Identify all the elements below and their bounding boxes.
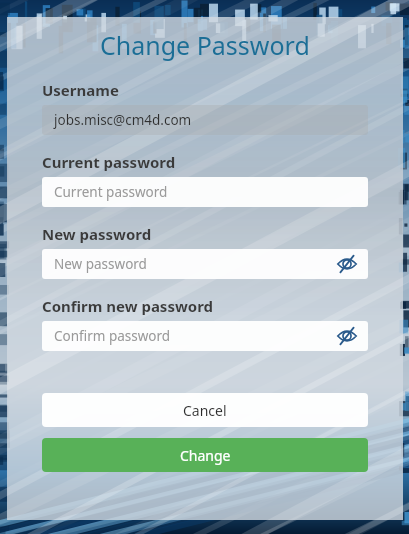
- button[interactable]: Show password: [334, 251, 360, 277]
- button[interactable]: Change: [42, 438, 368, 472]
- staticText: Confirm new password: [42, 296, 214, 316]
- staticText: Username: [42, 80, 119, 100]
- button[interactable]: Username field: [42, 105, 368, 135]
- staticText: New password: [54, 255, 147, 273]
- button[interactable]: Current password field: [42, 177, 368, 207]
- button[interactable]: Cancel: [42, 393, 368, 427]
- staticText: jobs.misc@cm4d.com: [54, 111, 192, 129]
- staticText: Cancel: [183, 401, 227, 420]
- staticText: Current password: [54, 183, 168, 201]
- button[interactable]: New password field: [42, 249, 368, 279]
- staticText: Current password: [42, 152, 176, 172]
- staticText: Change: [180, 446, 231, 465]
- staticText: New password: [42, 224, 152, 244]
- button[interactable]: Show password: [334, 323, 360, 349]
- staticText: Change Password: [100, 28, 310, 62]
- staticText: Confirm password: [54, 327, 171, 345]
- button[interactable]: Confirm password field: [42, 321, 368, 351]
